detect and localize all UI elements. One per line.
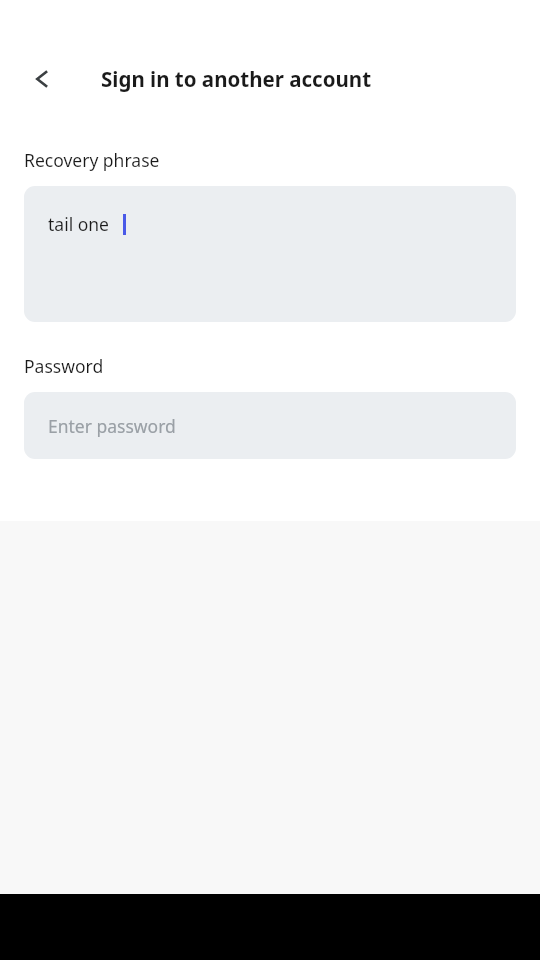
button[interactable]: tail one (24, 186, 516, 322)
staticText: Sign in to another account (101, 65, 372, 93)
staticText: Password (24, 354, 104, 378)
staticText: Recovery phrase (24, 148, 160, 172)
button[interactable]: Back (16, 51, 72, 107)
staticText: Enter password (48, 414, 176, 438)
button[interactable]: Enter password (24, 392, 516, 459)
staticText: tail one (48, 212, 114, 236)
